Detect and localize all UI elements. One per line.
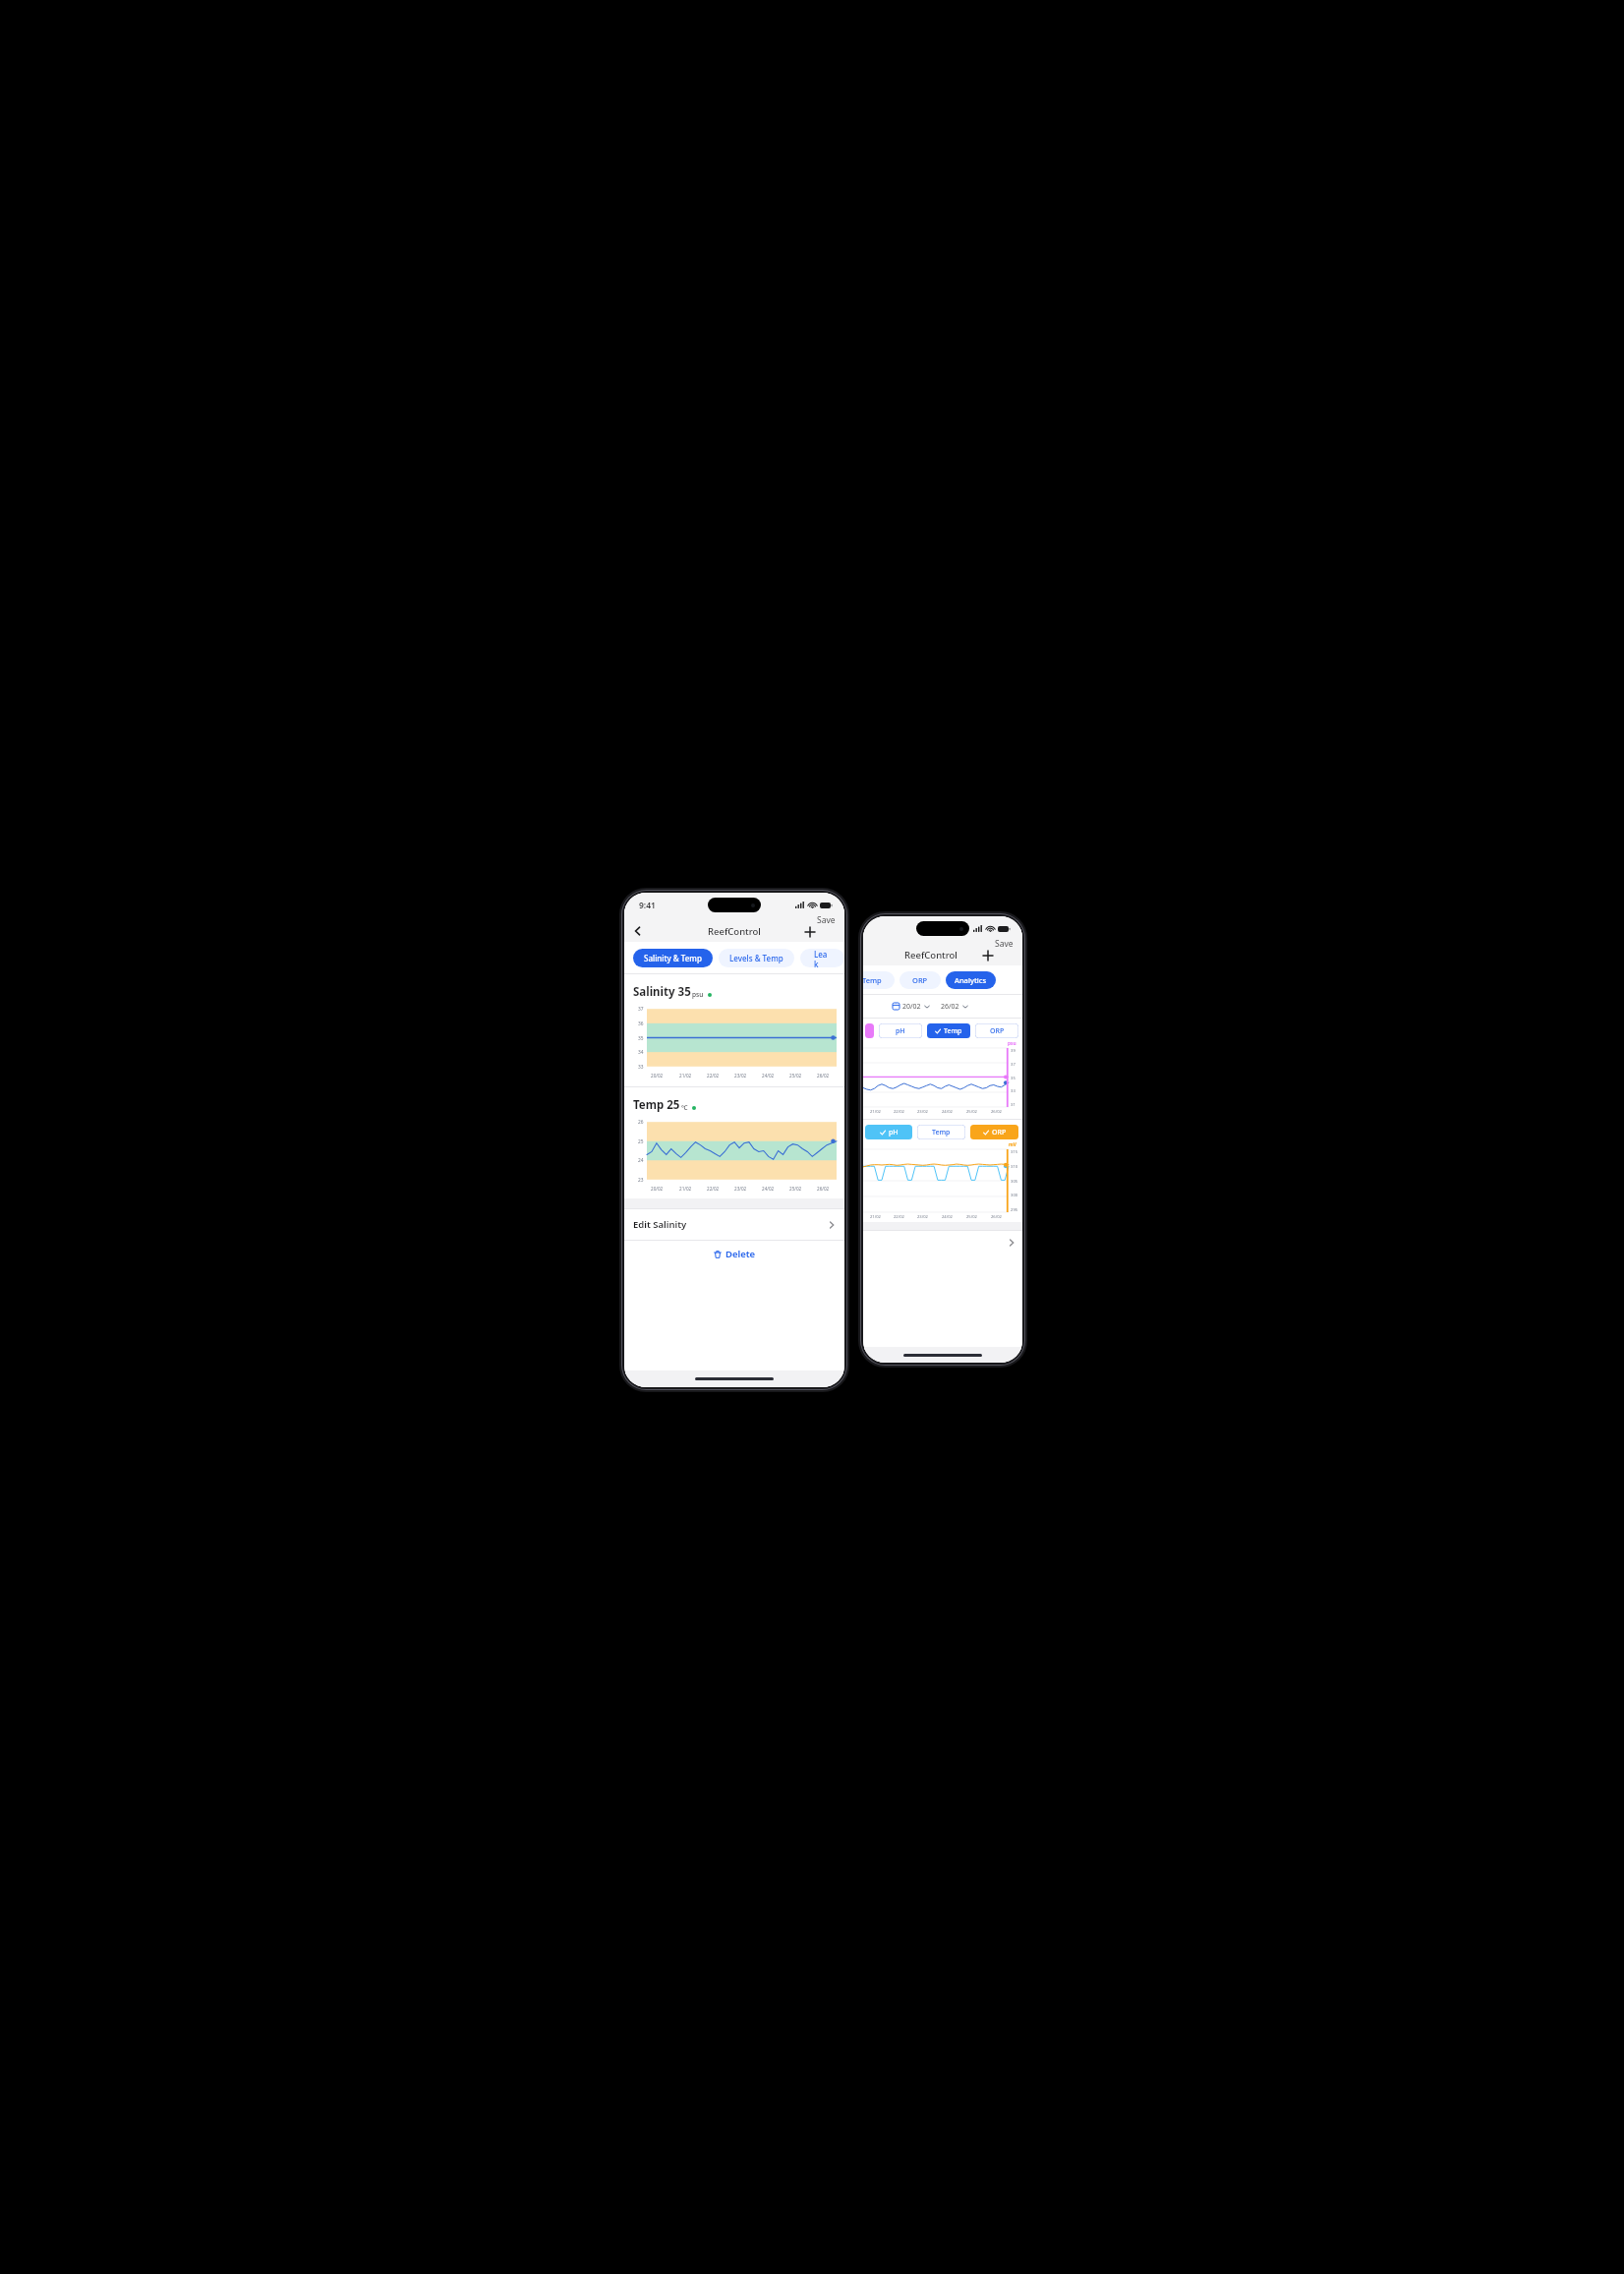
staticText: 9:41 [639,900,656,911]
staticText: 35 [1011,1076,1015,1080]
staticText: 23/02 [734,1073,747,1079]
button[interactable]: Delete [624,1241,844,1267]
staticText: 25/02 [966,1214,977,1220]
staticText: ORP [990,1026,1005,1036]
button[interactable]: Add [802,924,818,940]
staticText: 36 [638,1020,644,1026]
staticText: 26/02 [817,1073,830,1079]
staticText: ℃ [681,1103,688,1112]
button[interactable]: Levels & Temp [719,949,794,967]
button[interactable]: Temp [927,1023,970,1038]
button[interactable]: Add [980,948,996,963]
button[interactable]: ORP [970,1125,1018,1139]
staticText: 37 [1011,1062,1015,1067]
staticText: ReefControl [708,925,761,938]
staticText: 22/02 [894,1109,904,1115]
button[interactable]: Temp [863,971,895,989]
staticText: 25/02 [966,1109,977,1115]
staticText: 20/02 [651,1073,664,1079]
staticText: 310 [1011,1164,1018,1169]
staticText: 37 [638,1006,644,1012]
staticText: mV [1009,1141,1016,1148]
staticText: Salinity 35 [633,984,691,1000]
staticText: Levels & Temp [729,953,783,963]
staticText: Salinity & Temp [644,953,702,963]
button[interactable]: Temp [917,1125,965,1139]
button[interactable] [863,1231,1022,1254]
staticText: 23/02 [917,1214,928,1220]
button[interactable]: ORP [975,1023,1018,1038]
button[interactable]: Edit Salinity [624,1209,844,1240]
staticText: 24/02 [942,1109,953,1115]
button[interactable]: Back [629,922,647,940]
staticText: 20/02 [902,1002,921,1012]
staticText: 22/02 [707,1073,720,1079]
staticText: 33 [1011,1088,1015,1093]
staticText: pH [889,1128,899,1137]
staticText: 35 [638,1035,644,1041]
staticText: 39 [1011,1048,1015,1053]
staticText: 295 [1011,1207,1018,1212]
staticText: 22/02 [894,1214,904,1220]
staticText: 21/02 [870,1109,881,1115]
staticText: 305 [1011,1179,1018,1184]
staticText: psu [692,990,704,999]
staticText: pH [896,1026,905,1036]
button[interactable]: ORP [899,971,941,989]
staticText: Temp [932,1128,951,1137]
staticText: Edit Salinity [633,1218,687,1231]
staticText: psu [1008,1040,1016,1047]
staticText: 26 [638,1119,644,1125]
staticText: 23/02 [917,1109,928,1115]
button[interactable]: Leak [800,949,844,967]
staticText: 33 [638,1064,644,1070]
staticText: 34 [638,1049,644,1055]
staticText: Temp [944,1026,962,1036]
staticText: Analytics [955,975,987,985]
staticText: 300 [1011,1193,1018,1197]
staticText: 23/02 [734,1186,747,1192]
button[interactable]: pH [865,1125,912,1139]
staticText: ORP [992,1128,1007,1137]
staticText: 31 [1011,1102,1015,1107]
button[interactable]: 26/02 [941,1002,959,1012]
staticText: 24/02 [942,1214,953,1220]
staticText: 25 [638,1138,644,1144]
button[interactable]: Save [986,935,1022,953]
button[interactable]: 20/02 [902,1002,921,1012]
staticText: ReefControl [904,949,957,962]
staticText: ORP [912,975,928,985]
button[interactable]: pH [879,1023,922,1038]
staticText: 26/02 [817,1186,830,1192]
staticText: Temp 25 [633,1097,680,1113]
staticText: 21/02 [679,1073,692,1079]
staticText: 26/02 [991,1109,1002,1115]
staticText: 25/02 [789,1073,802,1079]
staticText: Save [817,914,836,926]
staticText: Delete [725,1248,756,1260]
staticText: 26/02 [941,1002,959,1012]
button[interactable]: Save [808,911,844,929]
staticText: 25/02 [789,1186,802,1192]
staticText: 26/02 [991,1214,1002,1220]
staticText: Temp [863,975,882,985]
button[interactable]: Salinity & Temp [633,949,713,967]
staticText: 315 [1011,1149,1018,1154]
button[interactable]: Salinity [865,1023,874,1038]
staticText: 21/02 [679,1186,692,1192]
staticText: 24 [638,1157,644,1163]
staticText: 21/02 [870,1214,881,1220]
staticText: 20/02 [651,1186,664,1192]
staticText: 22/02 [707,1186,720,1192]
staticText: 23 [638,1177,644,1183]
staticText: Save [995,938,1014,950]
staticText: Leak [814,949,831,967]
staticText: 24/02 [762,1073,775,1079]
button[interactable]: Analytics [946,971,996,989]
staticText: 24/02 [762,1186,775,1192]
